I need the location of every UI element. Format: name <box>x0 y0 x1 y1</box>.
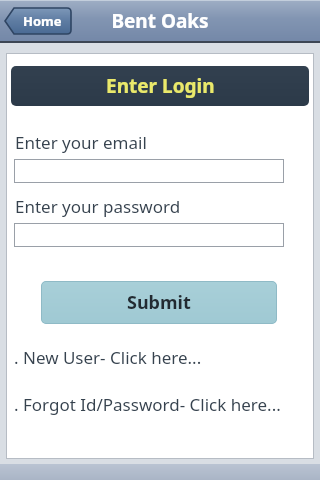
staticText: Enter your password <box>15 195 181 218</box>
staticText: . New User- Click here... <box>14 346 202 369</box>
button[interactable]: . New User- Click here... <box>6 345 314 369</box>
staticText: Bent Oaks <box>111 8 209 34</box>
staticText: Home <box>23 12 62 30</box>
button[interactable] <box>14 159 284 183</box>
button[interactable] <box>14 223 284 247</box>
staticText: . Forgot Id/Password- Click here... <box>14 393 281 416</box>
button[interactable]: . Forgot Id/Password- Click here... <box>6 392 314 416</box>
button[interactable]: Home <box>5 8 71 34</box>
staticText: Submit <box>127 290 191 315</box>
staticText: Enter Login <box>106 73 215 99</box>
button[interactable]: Submit <box>41 281 277 324</box>
staticText: Enter your email <box>15 131 147 154</box>
button[interactable]: Enter Login <box>11 66 309 106</box>
